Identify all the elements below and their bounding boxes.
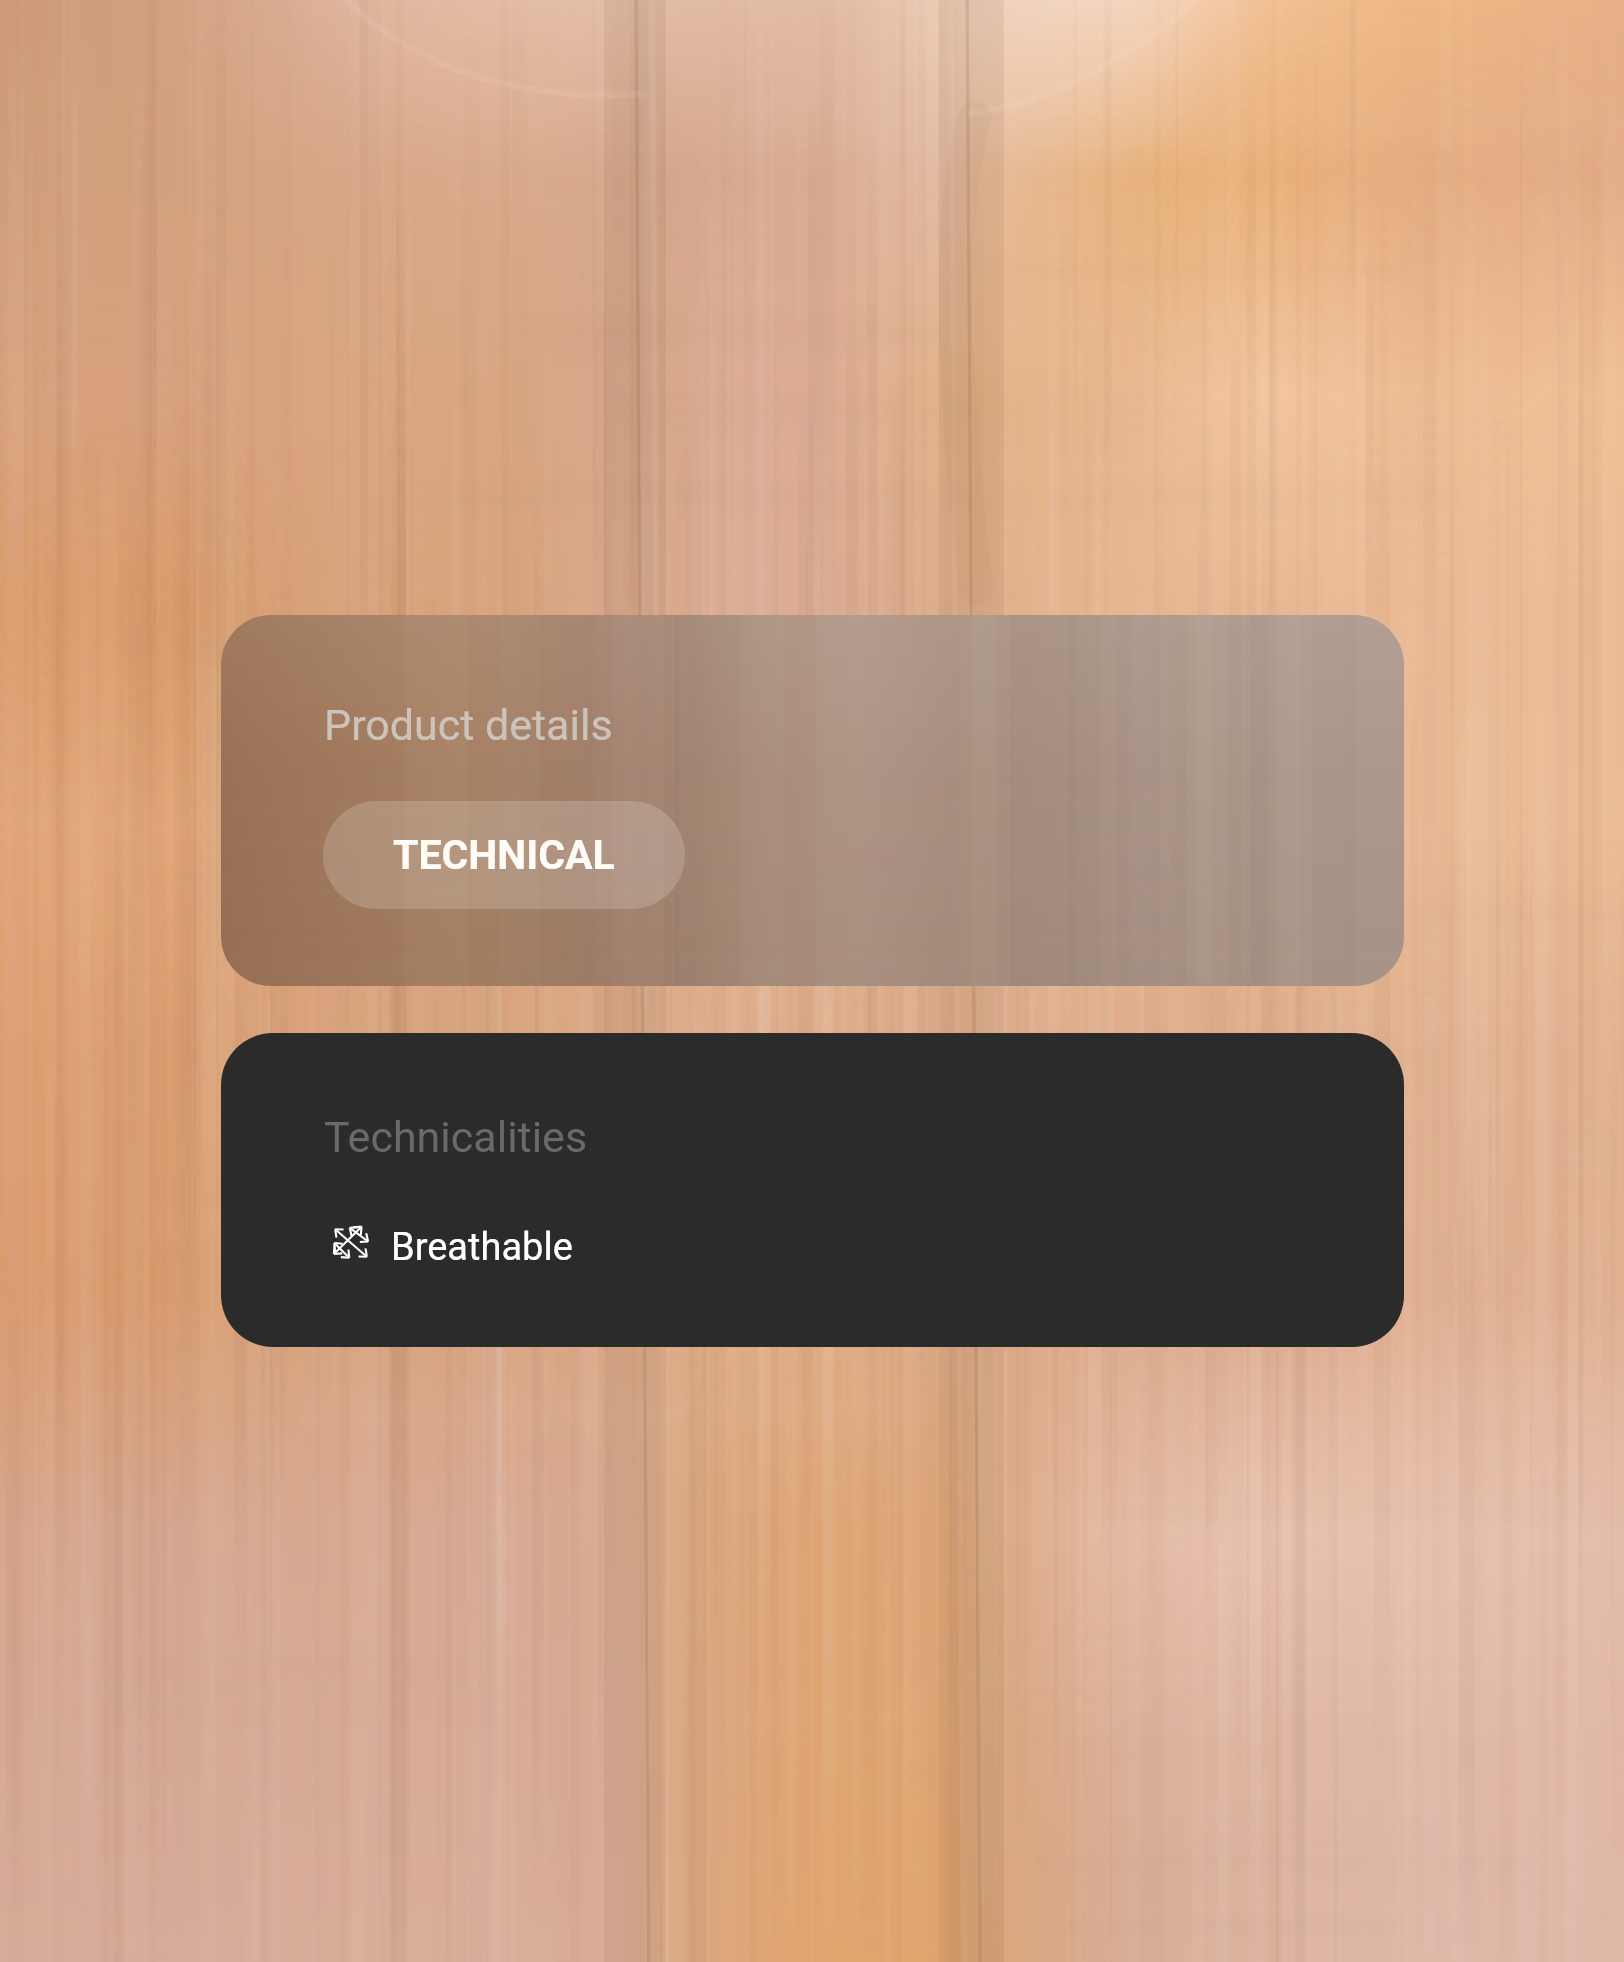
button[interactable]: Product details xyxy=(221,615,1404,986)
staticText: Product details xyxy=(324,700,613,750)
staticText: TECHNICAL xyxy=(393,831,615,879)
staticText: Technicalities xyxy=(324,1112,588,1162)
button[interactable]: Technicalities xyxy=(221,1033,1404,1347)
button[interactable]: TECHNICAL xyxy=(323,801,685,909)
other: Breathable xyxy=(329,1224,373,1262)
staticText: Breathable xyxy=(391,1225,573,1270)
